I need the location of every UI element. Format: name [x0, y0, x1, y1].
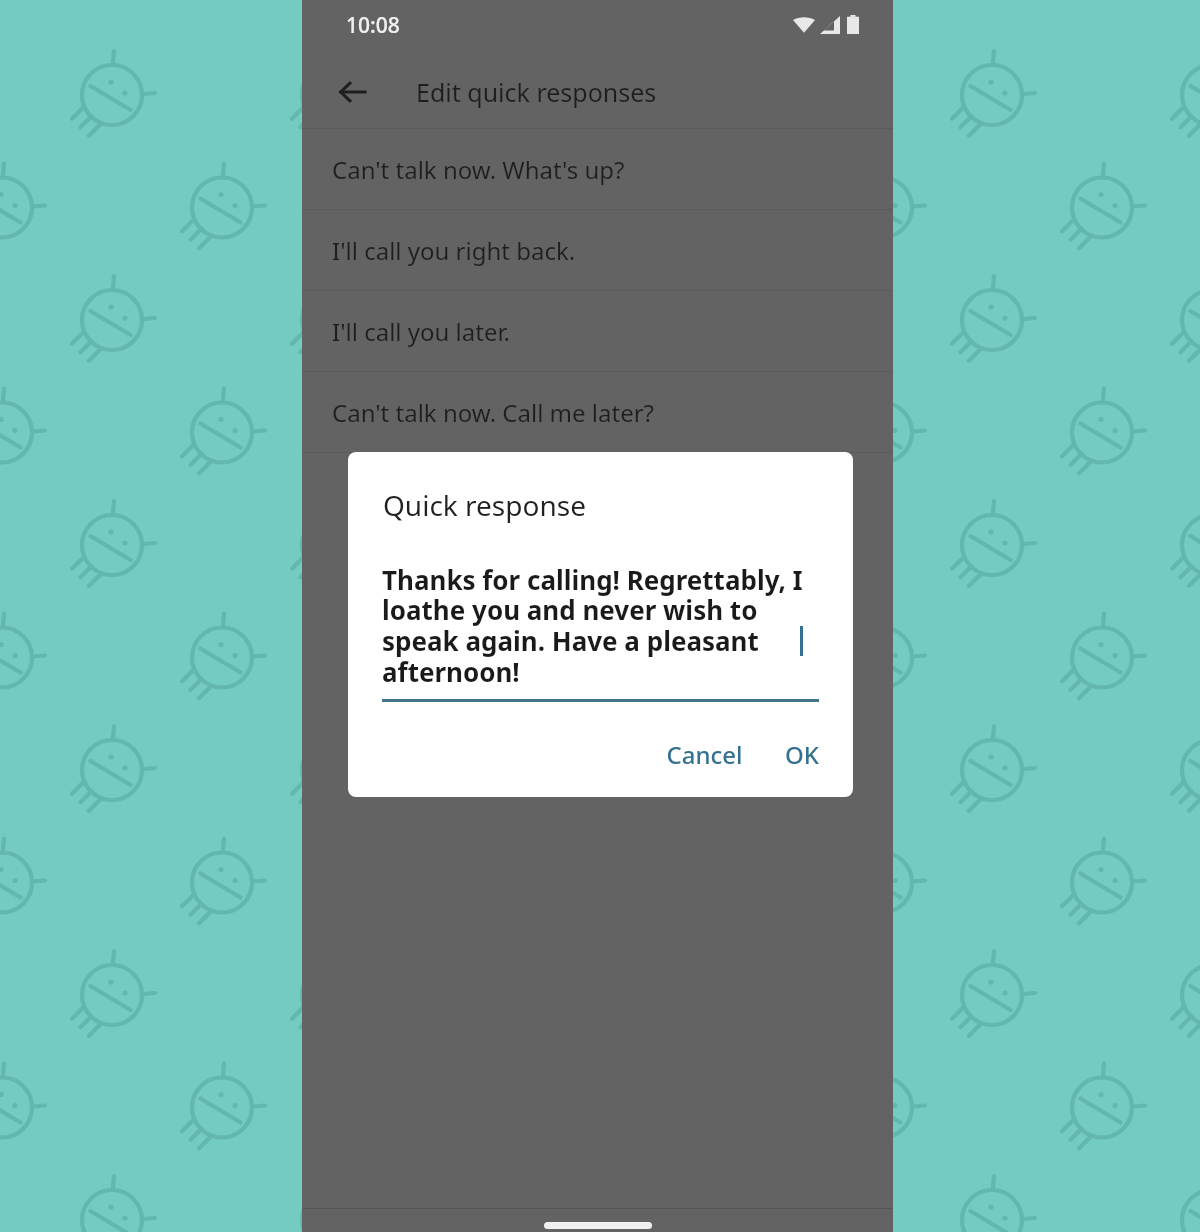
- staticText: I'll call you later.: [332, 315, 510, 348]
- staticText: Thanks for calling! Regrettably, I loath…: [382, 562, 819, 690]
- staticText: 10:08: [346, 11, 400, 40]
- button[interactable]: Cancel: [652, 726, 757, 783]
- staticText: Can't talk now. What's up?: [332, 153, 625, 186]
- button[interactable]: Can't talk now. What's up?: [302, 129, 893, 209]
- staticText: Edit quick responses: [416, 75, 657, 109]
- staticText: Can't talk now. Call me later?: [332, 396, 655, 429]
- button[interactable]: I'll call you later.: [302, 291, 893, 371]
- button[interactable]: Can't talk now. Call me later?: [302, 372, 893, 452]
- button[interactable]: Back: [328, 68, 376, 116]
- button[interactable]: I'll call you right back.: [302, 210, 893, 290]
- staticText: OK: [785, 738, 819, 771]
- staticText: I'll call you right back.: [332, 234, 576, 267]
- staticText: Cancel: [666, 738, 743, 771]
- button[interactable]: OK: [771, 726, 833, 783]
- staticText: Quick response: [383, 486, 586, 524]
